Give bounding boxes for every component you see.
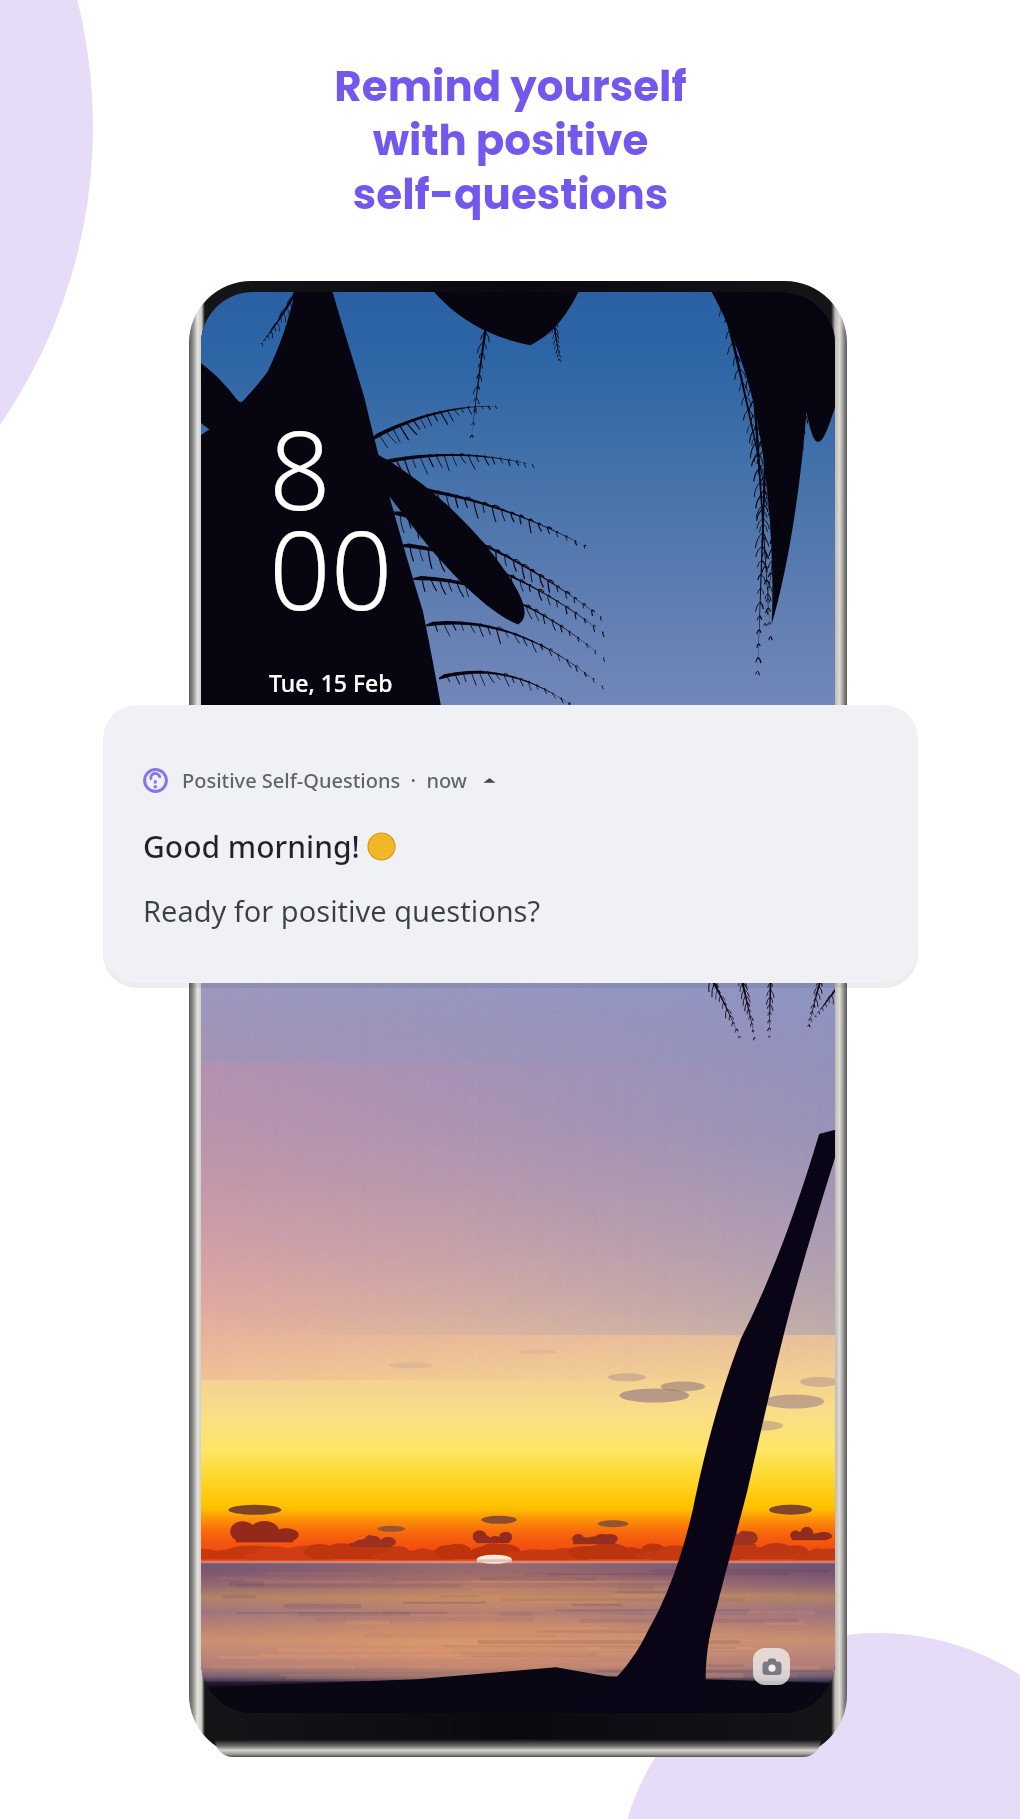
staticText: Positive Self-Questions · now: [182, 767, 467, 794]
staticText: Remind yourself with positive self-quest…: [334, 57, 687, 223]
button[interactable]: Camera: [753, 1648, 790, 1685]
staticText: Ready for positive questions?: [143, 891, 541, 930]
button[interactable]: Positive Self-Questions · now: [103, 705, 918, 983]
staticText: 8 00: [269, 395, 393, 641]
staticText: Tue, 15 Feb: [269, 667, 393, 698]
staticText: Good morning!: [143, 826, 368, 867]
